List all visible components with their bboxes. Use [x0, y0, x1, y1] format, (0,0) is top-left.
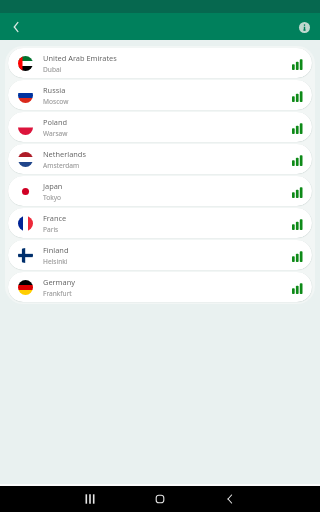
staticText: Poland: [43, 117, 68, 127]
button[interactable]: Germany: [8, 272, 312, 302]
button[interactable]: Information: [292, 15, 316, 39]
staticText: Russia: [43, 85, 66, 95]
staticText: Dubai: [43, 65, 62, 74]
staticText: Tokyo: [43, 193, 62, 202]
staticText: Amsterdam: [43, 161, 80, 170]
staticText: Japan: [43, 181, 63, 191]
button[interactable]: France: [8, 208, 312, 238]
staticText: Helsinki: [43, 257, 68, 266]
staticText: Frankfurt: [43, 289, 72, 298]
button[interactable]: United Arab Emirates: [8, 48, 312, 78]
staticText: Moscow: [43, 97, 69, 106]
button[interactable]: Japan: [8, 176, 312, 206]
staticText: Netherlands: [43, 149, 86, 159]
button[interactable]: Poland: [8, 112, 312, 142]
button[interactable]: Recent apps: [78, 487, 102, 511]
button[interactable]: Home: [148, 487, 172, 511]
staticText: France: [43, 213, 67, 223]
staticText: United Arab Emirates: [43, 53, 117, 63]
button[interactable]: Navigate up: [4, 15, 28, 39]
staticText: Warsaw: [43, 129, 68, 138]
button[interactable]: Russia: [8, 80, 312, 110]
button[interactable]: Finland: [8, 240, 312, 270]
staticText: Finland: [43, 245, 69, 255]
staticText: Paris: [43, 225, 59, 234]
button[interactable]: Back: [218, 487, 242, 511]
staticText: Germany: [43, 277, 75, 287]
button[interactable]: Netherlands: [8, 144, 312, 174]
